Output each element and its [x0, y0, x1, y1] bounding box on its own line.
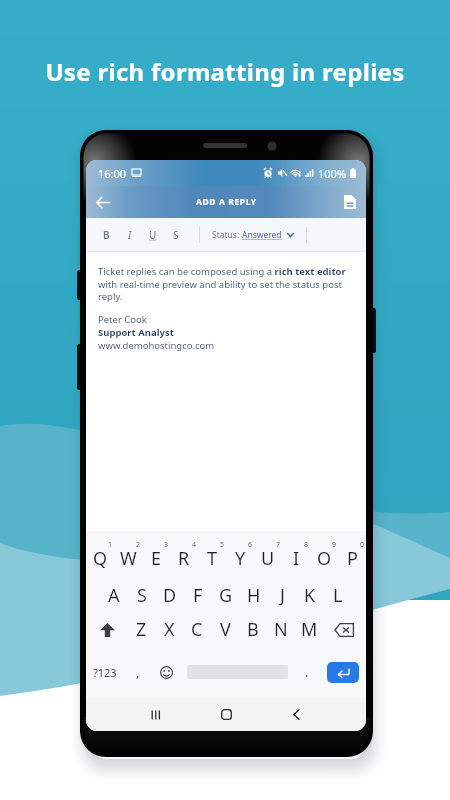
button[interactable]: Notes: [334, 186, 366, 218]
staticText: I: [293, 546, 300, 571]
staticText: H: [247, 583, 261, 608]
staticText: www.demohostingco.com: [98, 339, 215, 352]
staticText: Support Analyst: [98, 326, 174, 339]
staticText: U: [149, 228, 157, 242]
staticText: E: [151, 546, 162, 571]
staticText: N: [274, 617, 288, 642]
staticText: J: [280, 583, 285, 608]
staticText: Answered: [242, 229, 282, 241]
staticText: 6: [248, 540, 253, 550]
button[interactable]: D: [156, 578, 184, 613]
staticText: S: [137, 583, 147, 608]
staticText: 1: [108, 540, 113, 550]
button[interactable]: Shift: [86, 613, 128, 646]
staticText: Ticket replies can be composed using a r…: [98, 265, 354, 302]
button[interactable]: B: [239, 613, 267, 646]
staticText: T: [207, 546, 218, 571]
button[interactable]: I: [282, 531, 310, 578]
button[interactable]: Back: [261, 698, 331, 731]
button[interactable]: S: [128, 578, 156, 613]
button[interactable]: A: [100, 578, 128, 613]
staticText: 0: [360, 540, 365, 550]
staticText: Status:: [212, 229, 242, 241]
button[interactable]: W: [114, 531, 142, 578]
button[interactable]: B: [95, 218, 118, 252]
button[interactable]: H: [240, 578, 268, 613]
button[interactable]: V: [211, 613, 239, 646]
staticText: I: [128, 228, 132, 242]
staticText: 2: [136, 540, 141, 550]
button[interactable]: Recent apps: [121, 698, 191, 731]
staticText: B: [247, 617, 259, 642]
button[interactable]: M: [295, 613, 323, 646]
staticText: 5: [220, 540, 225, 550]
button[interactable]: Space: [187, 654, 288, 690]
staticText: 8: [304, 540, 309, 550]
button[interactable]: .: [295, 654, 319, 690]
button[interactable]: U: [141, 218, 164, 252]
staticText: S: [173, 228, 179, 242]
button[interactable]: J: [268, 578, 296, 613]
staticText: P: [347, 546, 358, 571]
staticText: ?123: [93, 665, 117, 680]
staticText: Peter Cook: [98, 313, 147, 326]
staticText: A: [108, 583, 120, 608]
button[interactable]: Z: [128, 613, 155, 646]
staticText: Y: [235, 546, 246, 571]
staticText: U: [261, 546, 275, 571]
staticText: 7: [276, 540, 281, 550]
button[interactable]: X: [155, 613, 183, 646]
staticText: G: [219, 583, 233, 608]
staticText: D: [163, 583, 177, 608]
button[interactable]: L: [324, 578, 352, 613]
staticText: W: [120, 546, 137, 571]
button[interactable]: S: [164, 218, 187, 252]
staticText: K: [304, 583, 316, 608]
staticText: 4: [192, 540, 197, 550]
staticText: V: [220, 617, 231, 642]
staticText: L: [333, 583, 343, 608]
button[interactable]: P: [338, 531, 366, 578]
button[interactable]: Emoji: [152, 654, 181, 690]
button[interactable]: T: [198, 531, 226, 578]
staticText: 100%: [318, 166, 347, 181]
button[interactable]: G: [212, 578, 240, 613]
staticText: .: [305, 663, 309, 681]
staticText: 16:00: [98, 166, 127, 181]
button[interactable]: Home: [191, 698, 261, 731]
staticText: M: [301, 617, 318, 642]
staticText: ADD A REPLY: [196, 196, 257, 208]
button[interactable]: R: [170, 531, 198, 578]
button[interactable]: O: [310, 531, 338, 578]
button[interactable]: C: [183, 613, 211, 646]
button[interactable]: E: [142, 531, 170, 578]
button[interactable]: ,: [123, 654, 152, 690]
staticText: B: [103, 228, 110, 242]
button[interactable]: Q: [86, 531, 114, 578]
button[interactable]: Y: [226, 531, 254, 578]
button[interactable]: Back: [86, 186, 120, 218]
staticText: Z: [136, 617, 147, 642]
staticText: X: [164, 617, 175, 642]
staticText: R: [178, 546, 190, 571]
staticText: 9: [332, 540, 337, 550]
staticText: Use rich formatting in replies: [45, 55, 405, 88]
button[interactable]: N: [267, 613, 295, 646]
button[interactable]: Backspace: [323, 613, 366, 646]
button[interactable]: ?123: [86, 654, 123, 690]
button[interactable]: Status:: [212, 218, 294, 252]
button[interactable]: U: [254, 531, 282, 578]
staticText: F: [193, 583, 203, 608]
staticText: Q: [93, 546, 108, 571]
button[interactable]: Enter: [327, 662, 359, 683]
staticText: C: [191, 617, 203, 642]
button[interactable]: K: [296, 578, 324, 613]
button[interactable]: F: [184, 578, 212, 613]
button[interactable]: I: [118, 218, 141, 252]
staticText: ,: [136, 663, 140, 681]
staticText: 3: [164, 540, 169, 550]
staticText: O: [317, 546, 332, 571]
